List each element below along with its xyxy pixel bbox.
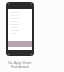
button[interactable]: Bottom navigation (8, 50, 32, 55)
button[interactable]: App bar (8, 3, 32, 9)
staticText: In-App User Feedback (6, 60, 34, 70)
